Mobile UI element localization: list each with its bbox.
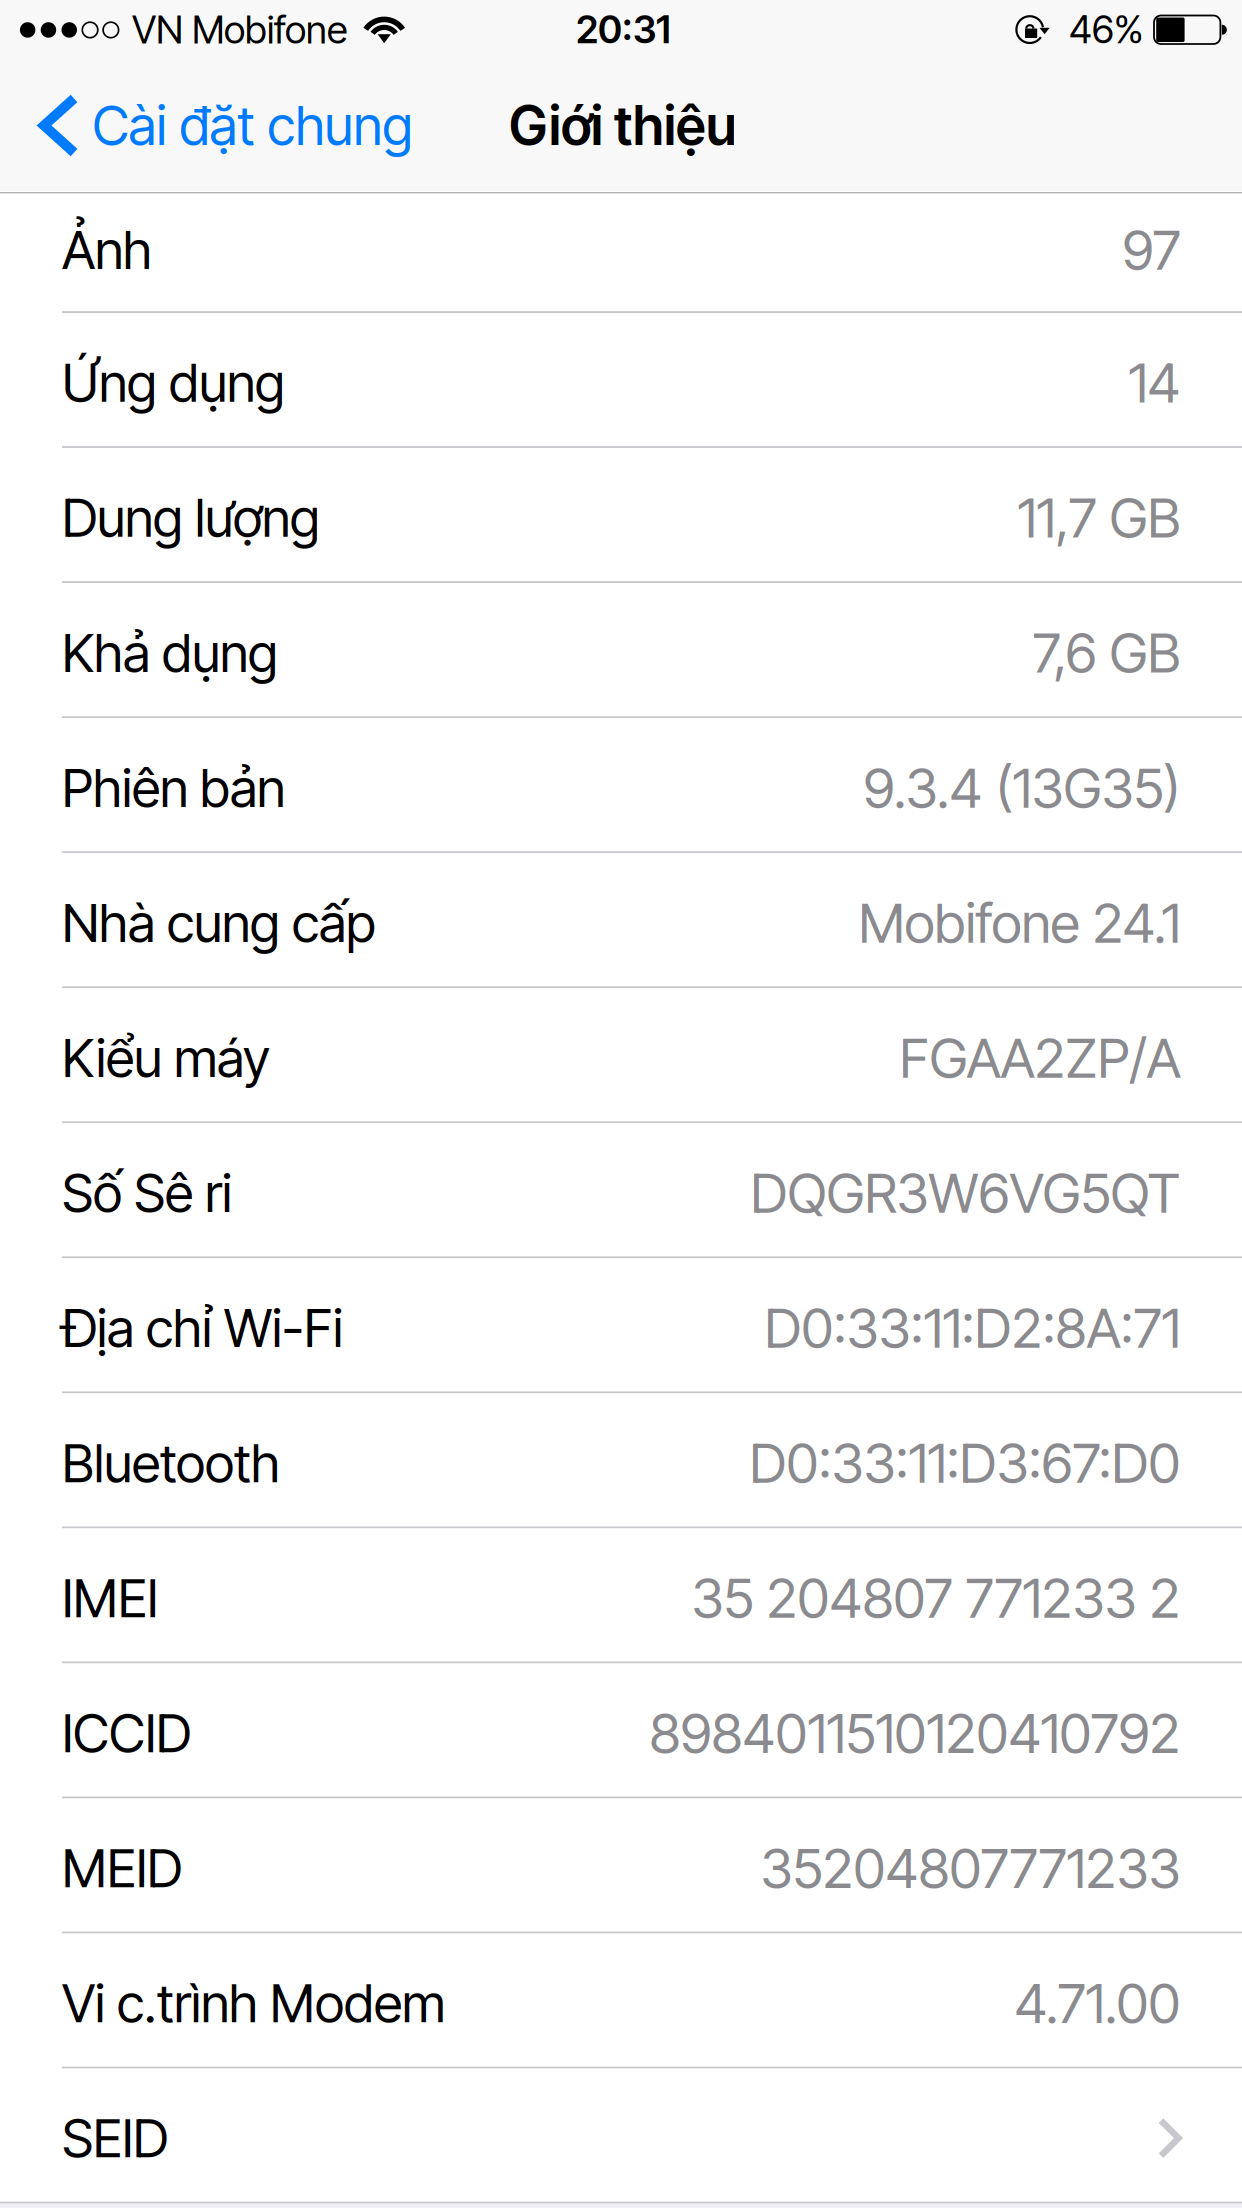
staticText: Mobifone 24.1 [858, 890, 1180, 956]
staticText: Số Sê ri [62, 1161, 232, 1225]
staticText: 35204807771233 [760, 1835, 1180, 1901]
staticText: VN Mobifone [132, 6, 347, 53]
staticText: D0:33:11:D3:67:D0 [749, 1430, 1180, 1496]
staticText: 8984011510120410792 [649, 1700, 1180, 1766]
button[interactable]: Bluetooth [0, 1393, 1242, 1526]
staticText: Vi c.trình Modem [62, 1971, 445, 2035]
button[interactable]: Ảnh [0, 194, 1242, 311]
staticText: IMEI [62, 1566, 158, 1630]
button[interactable]: ICCID [0, 1663, 1242, 1796]
button[interactable]: IMEI [0, 1528, 1242, 1661]
button[interactable]: Ứng dụng [0, 313, 1242, 446]
staticText: Ứng dụng [62, 351, 285, 415]
button[interactable]: Vi c.trình Modem [0, 1934, 1242, 2067]
button[interactable]: Nhà cung cấp [0, 853, 1242, 986]
staticText: Nhà cung cấp [62, 891, 376, 955]
button[interactable]: Khả dụng [0, 583, 1242, 716]
staticText: SEID [62, 2106, 168, 2170]
staticText: 97 [1122, 217, 1180, 283]
staticText: Bluetooth [62, 1431, 280, 1495]
staticText: 4.71.00 [1014, 1970, 1180, 2036]
staticText: Khả dụng [62, 621, 278, 685]
staticText: 20:31 [576, 6, 671, 52]
button[interactable]: Số Sê ri [0, 1123, 1242, 1256]
staticText: Ảnh [62, 218, 152, 282]
staticText: Dung lượng [62, 486, 320, 550]
staticText: 7,6 GB [1032, 620, 1180, 686]
staticText: Phiên bản [62, 756, 285, 820]
staticText: MEID [62, 1836, 182, 1900]
staticText: Kiểu máy [62, 1026, 270, 1090]
staticText: Địa chỉ Wi-Fi [62, 1296, 343, 1360]
staticText: Giới thiệu [509, 93, 736, 158]
staticText: 35 204807 771233 2 [691, 1565, 1180, 1631]
button[interactable]: SEID [0, 2069, 1242, 2202]
button[interactable]: Cài đặt chung [0, 60, 426, 191]
button[interactable]: Địa chỉ Wi-Fi [0, 1258, 1242, 1391]
button[interactable]: Dung lượng [0, 448, 1242, 581]
button[interactable]: Phiên bản [0, 718, 1242, 851]
staticText: 14 [1128, 349, 1180, 416]
button[interactable]: Kiểu máy [0, 988, 1242, 1121]
staticText: D0:33:11:D2:8A:71 [764, 1295, 1180, 1361]
staticText: 11,7 GB [1017, 485, 1180, 551]
staticText: FGAA2ZP/A [899, 1025, 1180, 1091]
staticText: 9.3.4 (13G35) [863, 755, 1180, 821]
button[interactable]: MEID [0, 1798, 1242, 1931]
staticText: Cài đặt chung [92, 93, 412, 158]
staticText: ICCID [62, 1701, 191, 1765]
staticText: 46% [1069, 6, 1143, 52]
staticText: DQGR3W6VG5QT [750, 1160, 1180, 1226]
